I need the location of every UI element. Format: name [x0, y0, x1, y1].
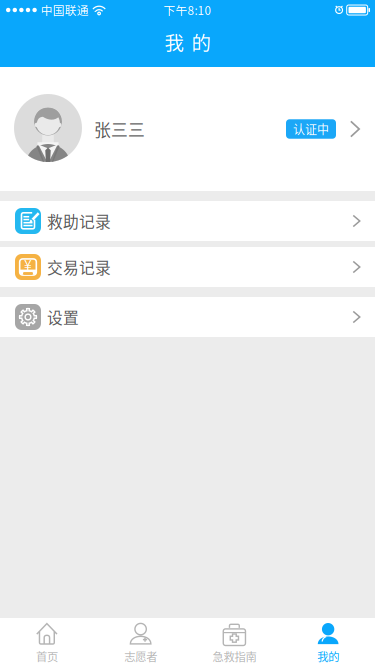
- staticText: 我的: [317, 648, 339, 664]
- staticText: 下午8:10: [163, 1, 211, 18]
- button[interactable]: 张三三: [0, 67, 375, 191]
- staticText: 认证中: [293, 120, 329, 138]
- button[interactable]: 设置: [0, 297, 375, 337]
- staticText: 交易记录: [47, 256, 111, 278]
- staticText: ¥: [24, 254, 32, 274]
- staticText: 志愿者: [124, 648, 157, 664]
- staticText: 设置: [47, 306, 79, 328]
- button[interactable]: 首页: [0, 618, 94, 667]
- staticText: 中国联通: [41, 1, 89, 18]
- staticText: 急救指南: [212, 648, 256, 664]
- staticText: 张三三: [94, 117, 145, 141]
- button[interactable]: 急救指南: [187, 618, 281, 667]
- button[interactable]: 我的: [281, 618, 375, 667]
- staticText: 首页: [36, 648, 58, 664]
- staticText: 救助记录: [47, 210, 111, 232]
- button[interactable]: 志愿者: [94, 618, 188, 667]
- button[interactable]: ¥: [0, 247, 375, 287]
- button[interactable]: 救助记录: [0, 201, 375, 241]
- staticText: 我 的: [164, 28, 210, 56]
